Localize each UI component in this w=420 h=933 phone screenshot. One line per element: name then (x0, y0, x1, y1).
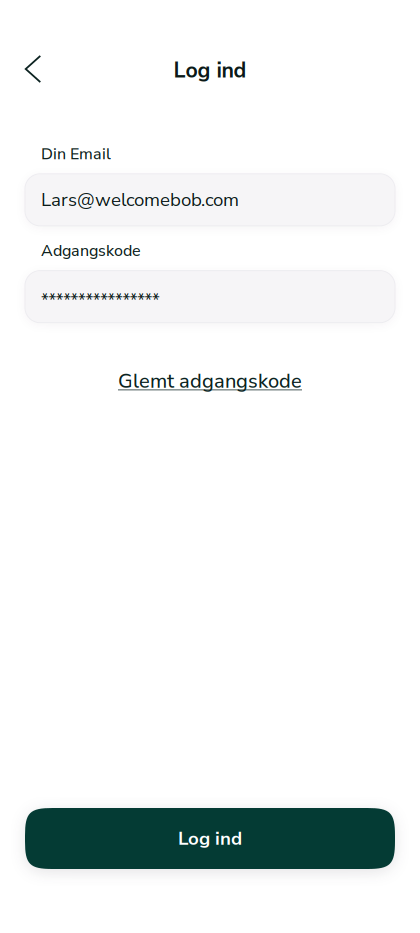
staticText: Lars@welcomebob.com (41, 187, 239, 213)
button[interactable]: Back (13, 49, 53, 89)
staticText: **************** (41, 289, 160, 312)
button[interactable]: Adgangskode (25, 271, 395, 323)
staticText: Glemt adgangskode (118, 368, 302, 395)
staticText: Log ind (173, 56, 246, 85)
staticText: Log ind (178, 826, 242, 851)
button[interactable]: Din Email (25, 174, 395, 226)
staticText: Din Email (41, 143, 111, 165)
button[interactable]: Glemt adgangskode (100, 358, 320, 405)
button[interactable]: Log ind (25, 808, 395, 869)
staticText: Adgangskode (41, 240, 141, 262)
